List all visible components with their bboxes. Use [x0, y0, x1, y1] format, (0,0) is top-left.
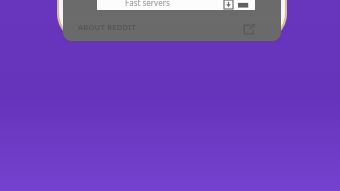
- button[interactable]: Share: [239, 18, 259, 38]
- staticText: ABOUT REDDIT: [78, 22, 136, 32]
- button[interactable]: Device: [238, 0, 250, 9]
- button[interactable]: ABOUT REDDIT: [76, 20, 138, 34]
- button[interactable]: Save: [224, 0, 233, 9]
- staticText: Fast servers: [125, 0, 170, 8]
- button[interactable]: Fast servers: [97, 0, 255, 10]
